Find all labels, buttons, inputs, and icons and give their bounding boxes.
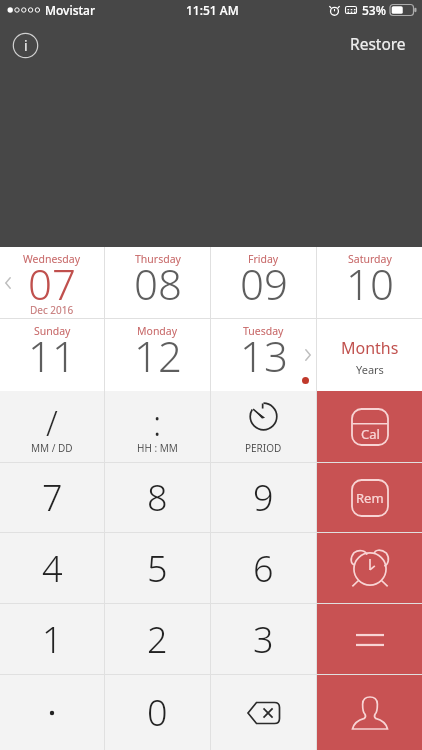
staticText: HH : MM: [137, 441, 178, 455]
button[interactable]: 5: [105, 533, 210, 603]
button[interactable]: Equals: [317, 604, 422, 674]
button[interactable]: Delete: [211, 675, 316, 750]
staticText: 11: [28, 327, 76, 384]
staticText: 53%: [362, 2, 386, 18]
button[interactable]: Friday: [211, 247, 316, 318]
staticText: 08: [134, 255, 182, 312]
button[interactable]: 8: [105, 463, 210, 532]
staticText: 12: [134, 327, 182, 384]
staticText: Rem: [356, 489, 384, 507]
button[interactable]: [0, 675, 104, 750]
button[interactable]: /: [0, 391, 104, 462]
staticText: 09: [240, 255, 288, 312]
button[interactable]: Months: [317, 319, 422, 391]
button[interactable]: 0: [105, 675, 210, 750]
button[interactable]: 2: [105, 604, 210, 674]
button[interactable]: Sunday: [0, 319, 104, 391]
staticText: MM / DD: [31, 441, 73, 455]
staticText: Sunday: [34, 324, 71, 338]
button[interactable]: 9: [211, 463, 316, 532]
staticText: 8: [147, 473, 168, 522]
staticText: Saturday: [348, 252, 392, 266]
button[interactable]: Thursday: [105, 247, 210, 318]
staticText: 11:51 AM: [186, 2, 239, 18]
button[interactable]: 3: [211, 604, 316, 674]
staticText: 9: [253, 473, 274, 522]
button[interactable]: Reminder: [317, 463, 422, 532]
staticText: Tuesday: [243, 324, 284, 338]
button[interactable]: PERIOD: [211, 391, 316, 462]
staticText: 4: [42, 544, 63, 593]
staticText: 07: [28, 255, 76, 312]
staticText: /: [46, 400, 58, 446]
staticText: 5: [147, 544, 168, 593]
button[interactable]: Tuesday: [211, 319, 316, 391]
button[interactable]: 6: [211, 533, 316, 603]
staticText: Dec 2016: [30, 303, 74, 317]
button[interactable]: Saturday: [317, 247, 422, 318]
button[interactable]: Calendar: [317, 391, 422, 462]
button[interactable]: 1: [0, 604, 104, 674]
button[interactable]: Wednesday: [0, 247, 104, 318]
staticText: Friday: [248, 252, 279, 266]
button[interactable]: Contacts: [317, 675, 422, 750]
staticText: Months: [341, 337, 399, 359]
staticText: Wednesday: [23, 252, 81, 266]
staticText: 1: [42, 615, 63, 664]
staticText: Movistar: [45, 2, 96, 18]
staticText: PERIOD: [245, 441, 282, 455]
staticText: 6: [253, 544, 274, 593]
staticText: 7: [42, 473, 63, 522]
staticText: :: [153, 400, 162, 446]
button[interactable]: :: [105, 391, 210, 462]
staticText: Cal: [361, 425, 380, 443]
button[interactable]: Restore: [350, 33, 406, 54]
staticText: 10: [346, 255, 394, 312]
staticText: Restore: [350, 33, 406, 54]
staticText: Monday: [137, 324, 178, 338]
staticText: 2: [147, 615, 168, 664]
button[interactable]: Monday: [105, 319, 210, 391]
button[interactable]: 7: [0, 463, 104, 532]
staticText: 13: [240, 327, 288, 384]
staticText: 0: [147, 688, 168, 737]
button[interactable]: Info: [10, 30, 41, 61]
button[interactable]: 4: [0, 533, 104, 603]
button[interactable]: Alarm: [317, 533, 422, 603]
staticText: i: [24, 36, 28, 55]
staticText: Years: [356, 362, 384, 377]
staticText: 3: [253, 615, 274, 664]
staticText: Thursday: [135, 252, 181, 266]
